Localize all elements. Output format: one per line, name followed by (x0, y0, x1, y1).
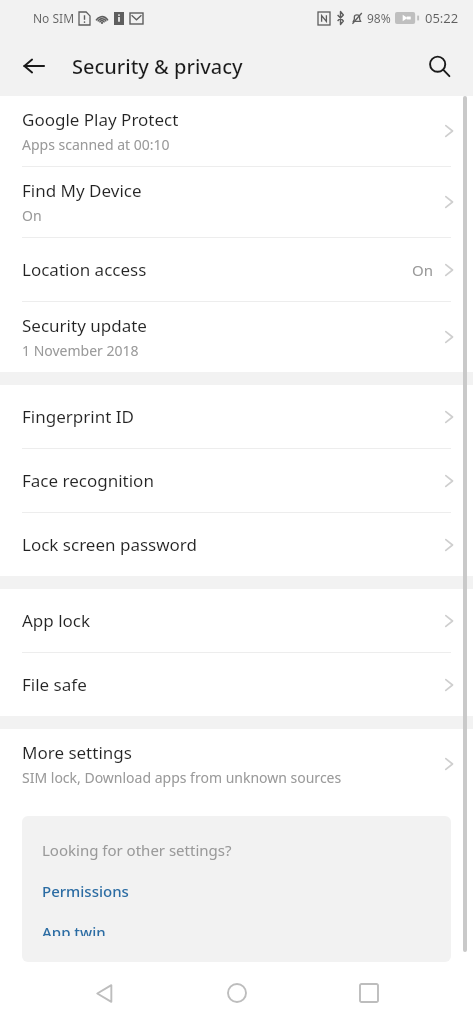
staticText: Location access (22, 258, 147, 281)
button[interactable]: More settings (0, 729, 473, 799)
staticText: 05:22 (425, 9, 459, 27)
staticText: On (412, 260, 433, 280)
button[interactable]: Back (76, 965, 132, 1021)
staticText: No SIM (33, 10, 75, 26)
button[interactable]: Search (415, 42, 463, 90)
staticText: 98% (367, 10, 391, 26)
staticText: On (22, 206, 42, 225)
button[interactable]: Back (10, 42, 58, 90)
staticText: Permissions (42, 881, 129, 901)
staticText: App twin (42, 922, 106, 936)
button[interactable]: Fingerprint ID (0, 385, 473, 448)
button[interactable]: Recents (341, 965, 397, 1021)
staticText: Lock screen password (22, 533, 197, 556)
staticText: Face recognition (22, 469, 154, 492)
button[interactable]: Security update (0, 302, 473, 372)
button[interactable]: Permissions (42, 881, 129, 901)
staticText: More settings (22, 741, 132, 764)
button[interactable]: Google Play Protect (0, 96, 473, 166)
staticText: Security & privacy (72, 53, 243, 80)
button[interactable]: Face recognition (0, 449, 473, 512)
button[interactable]: Home (209, 965, 265, 1021)
button[interactable]: Lock screen password (0, 513, 473, 576)
button[interactable]: Location access (0, 238, 473, 301)
staticText: Fingerprint ID (22, 405, 134, 428)
button[interactable]: Find My Device (0, 167, 473, 237)
staticText: File safe (22, 673, 87, 696)
staticText: Apps scanned at 00:10 (22, 135, 170, 154)
button[interactable]: File safe (0, 653, 473, 716)
staticText: Google Play Protect (22, 108, 179, 131)
staticText: Find My Device (22, 179, 142, 202)
staticText: Looking for other settings? (42, 840, 232, 860)
staticText: SIM lock, Download apps from unknown sou… (22, 768, 342, 787)
staticText: 1 November 2018 (22, 341, 139, 360)
button[interactable]: App lock (0, 589, 473, 652)
button[interactable]: App twin (42, 922, 106, 936)
staticText: Security update (22, 314, 147, 337)
staticText: App lock (22, 609, 91, 632)
